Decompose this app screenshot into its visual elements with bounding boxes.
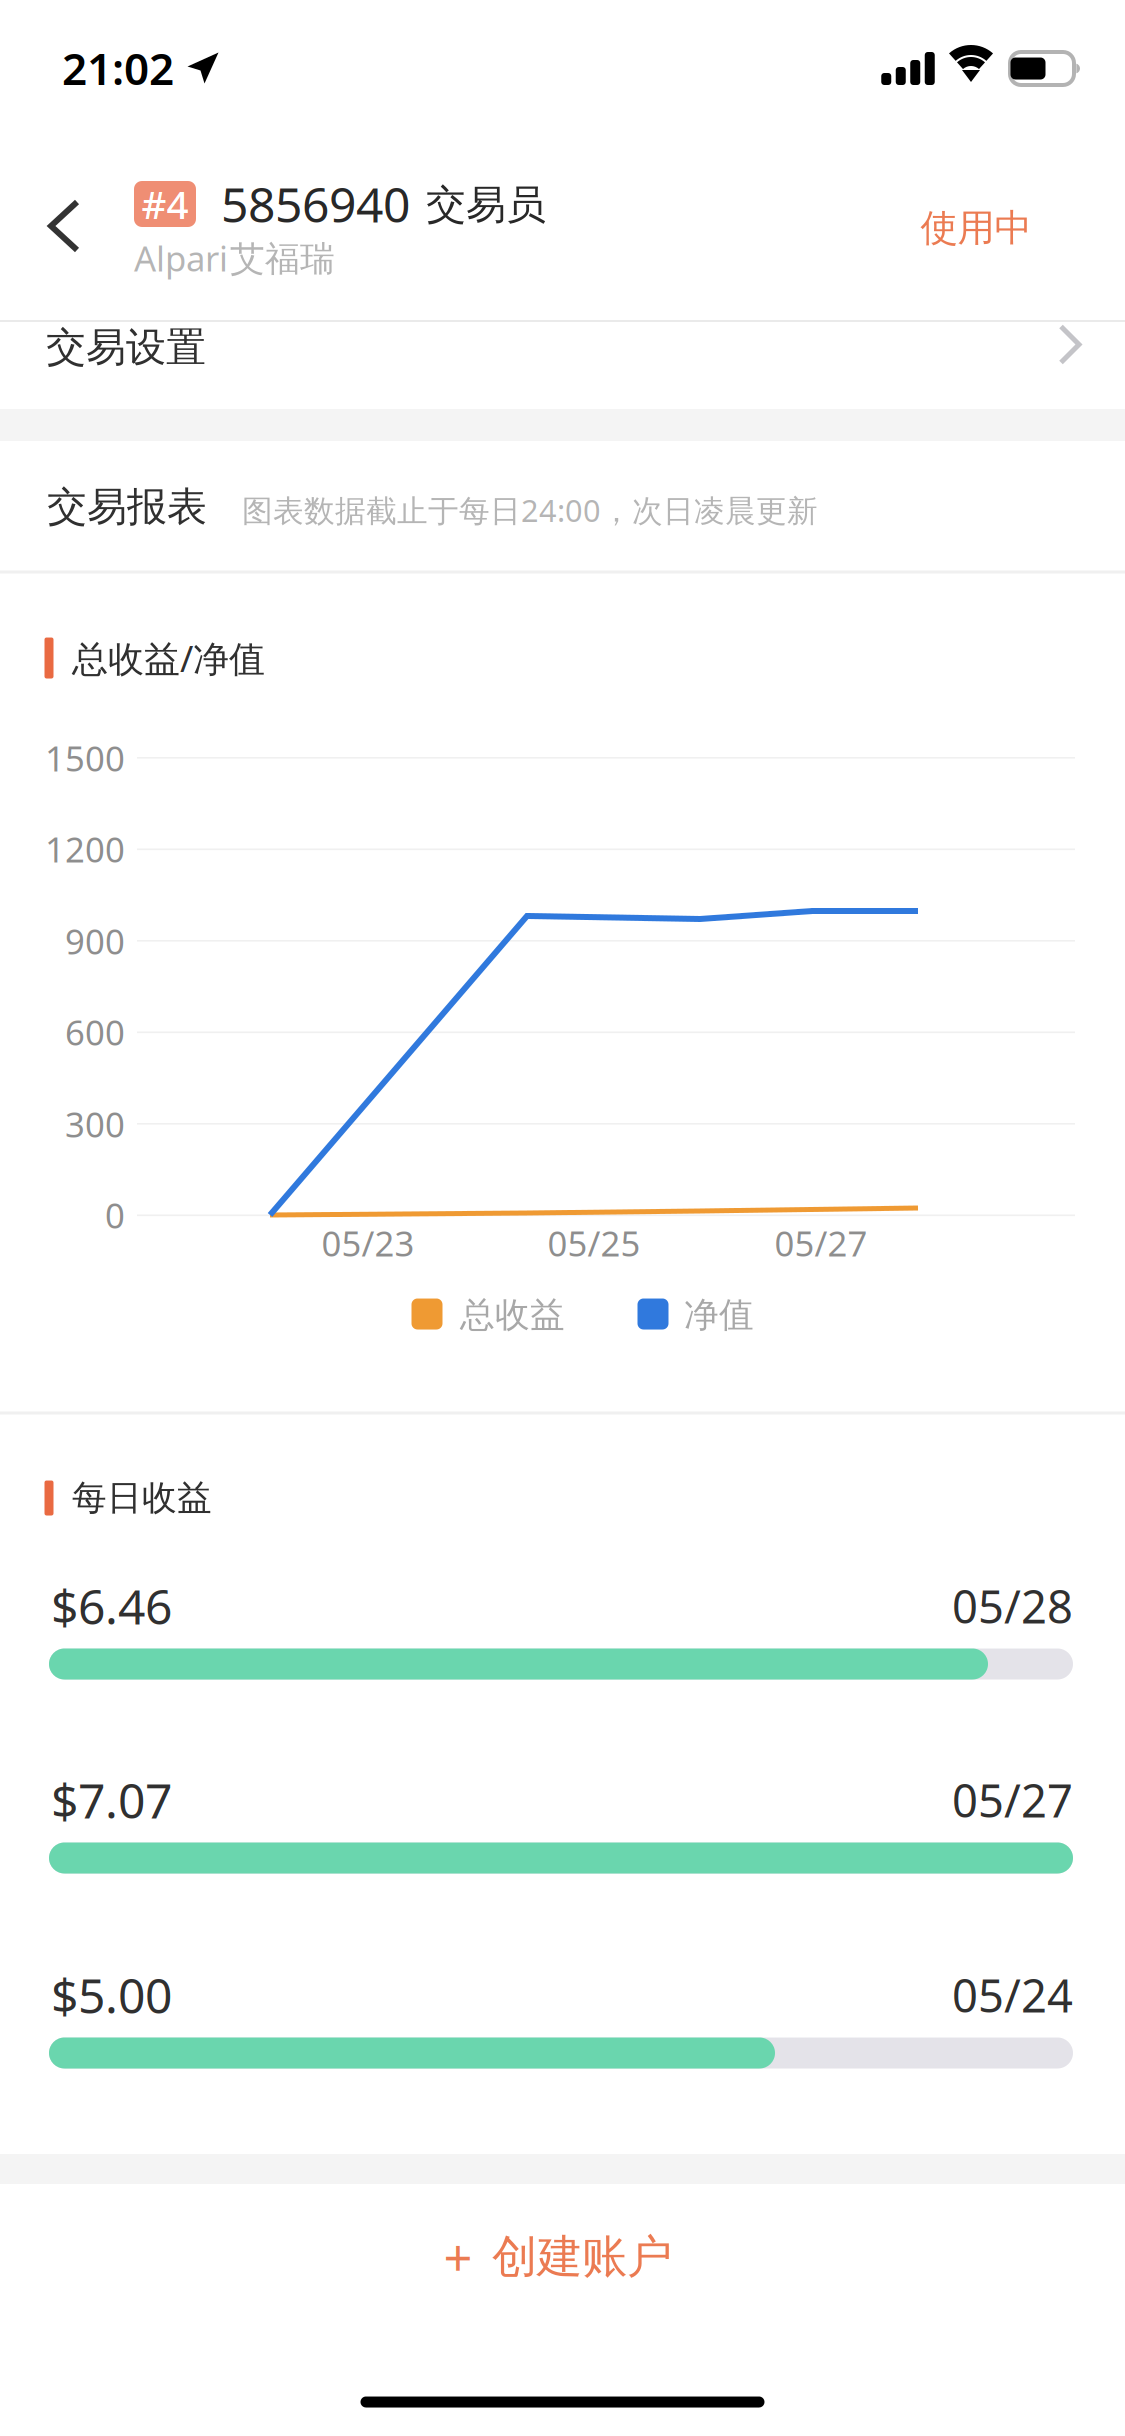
staticText: #4 [141,178,188,230]
staticText: $6.46 [51,1574,172,1638]
button[interactable]: + [0,0,1125,2436]
staticText: 0 [105,1192,125,1238]
staticText: 净值 [684,1294,754,1336]
staticText: 图表数据截止于每日24:00，次日凌晨更新 [242,490,818,530]
staticText: 05/27 [774,1220,867,1266]
staticText: 05/27 [952,1770,1073,1830]
staticText: 05/28 [952,1576,1073,1636]
button[interactable]: 交易设置 [0,0,1125,2436]
staticText: 05/23 [321,1220,414,1266]
staticText: 交易报表 [47,482,207,531]
staticText: $5.00 [51,1963,172,2027]
staticText: 21:02 [62,39,174,97]
staticText: 总收益/净值 [72,634,265,682]
staticText: + [443,2223,472,2291]
staticText: 600 [65,1009,125,1055]
staticText: 每日收益 [72,1477,212,1519]
staticText: $7.07 [51,1768,172,1832]
staticText: 300 [65,1101,125,1147]
button[interactable]: Back [0,132,1125,318]
staticText: 5856940 [221,172,410,236]
staticText: 创建账户 [492,2229,672,2285]
staticText: Alpari [134,235,228,281]
button[interactable]: 使用中 [0,132,1125,318]
staticText: 05/24 [952,1965,1073,2025]
staticText: 艾福瑞 [230,238,335,280]
staticText: 交易设置 [46,323,206,372]
staticText: 05/25 [547,1220,640,1266]
staticText: 使用中 [920,205,1031,251]
staticText: 900 [65,918,125,964]
staticText: 交易员 [426,180,546,229]
staticText: 1500 [45,735,125,781]
staticText: 总收益 [460,1294,565,1336]
staticText: 1200 [45,826,125,872]
